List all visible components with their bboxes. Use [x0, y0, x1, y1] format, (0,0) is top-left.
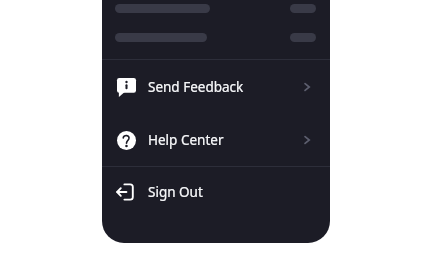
staticText: Send Feedback: [148, 78, 244, 96]
other: Help Center: [117, 131, 136, 150]
button[interactable]: Sign Out: [102, 167, 330, 217]
other: Sign Out: [116, 182, 136, 202]
button[interactable]: Help Center: [102, 114, 330, 166]
staticText: Help Center: [148, 131, 224, 149]
other: Send Feedback: [117, 78, 136, 97]
staticText: Sign Out: [148, 183, 203, 201]
button[interactable]: Send Feedback: [102, 60, 330, 114]
